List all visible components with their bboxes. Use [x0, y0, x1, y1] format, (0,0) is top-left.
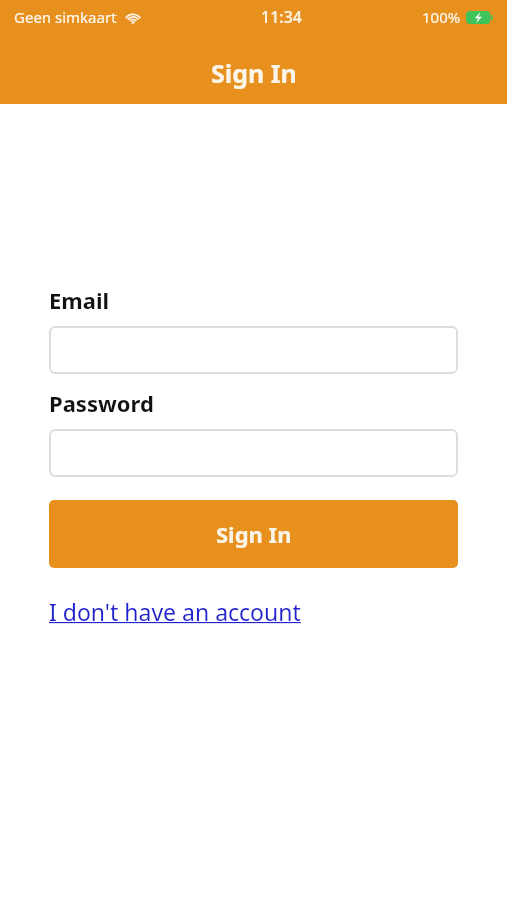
staticText: I don't have an account [49, 596, 301, 627]
staticText: 11:34 [261, 6, 302, 28]
staticText: Sign In [216, 519, 292, 549]
staticText: Password [49, 388, 154, 418]
staticText: Email [49, 285, 110, 315]
staticText: 100% [422, 7, 461, 27]
button[interactable]: I don't have an account [49, 596, 301, 627]
staticText: Sign In [211, 56, 297, 90]
button[interactable]: Sign In [49, 500, 458, 568]
button[interactable] [49, 326, 458, 374]
button[interactable] [49, 429, 458, 477]
staticText: Geen simkaart [14, 7, 117, 27]
